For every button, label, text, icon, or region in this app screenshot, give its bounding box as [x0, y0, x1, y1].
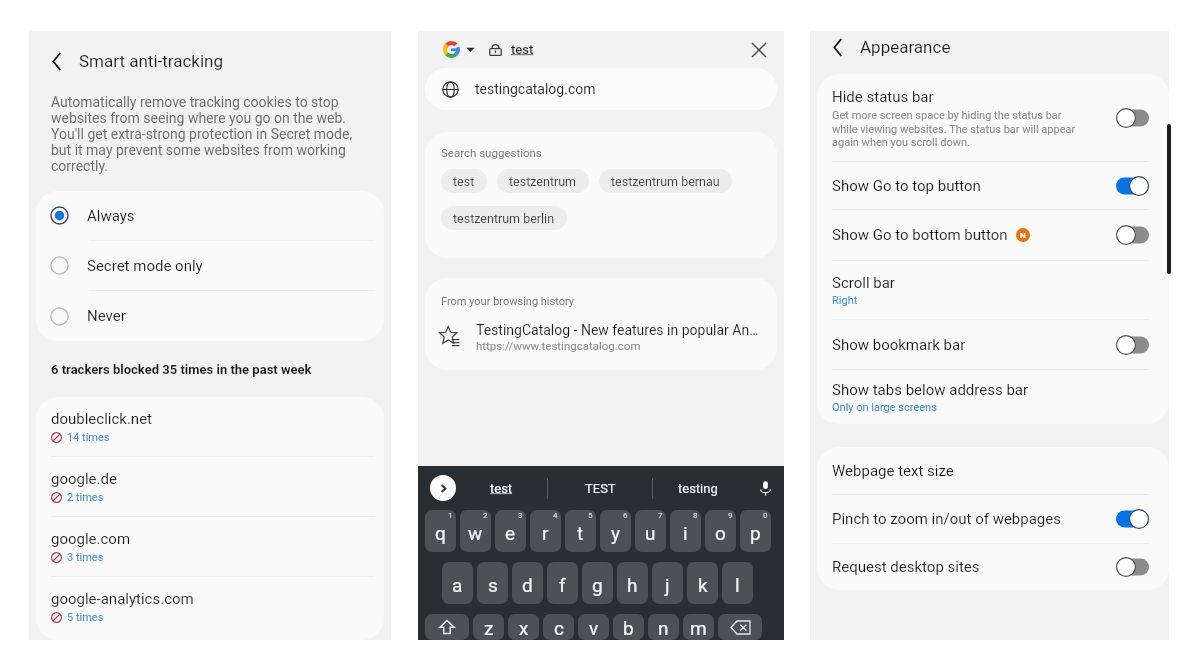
staticText: testzentrum	[509, 174, 577, 189]
staticText: 7	[658, 511, 663, 520]
button[interactable]: Show Go to top button	[817, 162, 1169, 210]
button[interactable]: Toggle off	[1116, 225, 1149, 245]
staticText: Automatically remove tracking cookies to…	[51, 94, 363, 174]
staticText: Hide status bar	[832, 88, 934, 106]
button[interactable]: Show tabs below address bar	[817, 370, 1169, 424]
button[interactable]: Toggle on	[1116, 509, 1149, 529]
button[interactable]: testzentrum bernau	[599, 169, 732, 193]
button[interactable]: Show Go to bottom button	[817, 210, 1169, 261]
staticText: testingcatalog.com	[475, 81, 596, 97]
staticText: a	[452, 574, 463, 596]
staticText: k	[698, 574, 708, 596]
button[interactable]: l	[722, 562, 753, 604]
staticText: n	[658, 617, 669, 639]
staticText: testzentrum bernau	[611, 174, 720, 189]
staticText: 0	[763, 511, 768, 520]
button[interactable]: Toggle on	[1116, 176, 1149, 196]
button[interactable]: Back	[29, 31, 391, 91]
staticText: c	[554, 617, 564, 639]
staticText: 3 times	[67, 551, 104, 564]
button[interactable]: z	[473, 614, 504, 640]
button[interactable]: Shift	[425, 614, 469, 640]
button[interactable]: v	[578, 614, 609, 640]
button[interactable]: testzentrum	[497, 169, 589, 193]
button[interactable]: g	[582, 562, 613, 604]
staticText: w	[468, 522, 483, 544]
button[interactable]: google.com	[36, 517, 384, 577]
button[interactable]: Always	[36, 191, 384, 241]
staticText: 4	[553, 511, 558, 520]
staticText: testzentrum berlin	[453, 211, 555, 226]
button[interactable]: More suggestions	[430, 475, 456, 501]
button[interactable]: Request desktop sites	[817, 544, 1169, 590]
button[interactable]: k	[687, 562, 718, 604]
button[interactable]: google-analytics.com	[36, 577, 384, 640]
button[interactable]: m	[683, 614, 714, 640]
button[interactable]: h	[617, 562, 648, 604]
button[interactable]: Secret mode only	[36, 241, 384, 291]
button[interactable]: Toggle off	[1116, 335, 1149, 355]
button[interactable]: 4	[530, 510, 561, 552]
staticText: i	[683, 522, 688, 544]
button[interactable]: n	[648, 614, 679, 640]
staticText: l	[735, 574, 740, 596]
staticText: 9	[728, 511, 733, 520]
staticText: g	[592, 574, 603, 596]
button[interactable]: TEST	[548, 471, 652, 505]
button[interactable]: Webpage text size	[817, 447, 1169, 495]
button[interactable]: testing	[653, 471, 743, 505]
staticText: r	[542, 522, 549, 544]
staticText: Search suggestions	[441, 146, 542, 159]
button[interactable]: 8	[670, 510, 701, 552]
staticText: Show Go to top button	[832, 177, 981, 195]
button[interactable]: testingcatalog.com	[425, 68, 777, 110]
staticText: Webpage text size	[832, 462, 954, 480]
button[interactable]: x	[508, 614, 539, 640]
button[interactable]: google.de	[36, 457, 384, 517]
button[interactable]: 3	[495, 510, 526, 552]
button[interactable]: Voice input	[750, 473, 780, 503]
button[interactable]: b	[613, 614, 644, 640]
button[interactable]: 2	[460, 510, 491, 552]
button[interactable]: Search engine	[443, 41, 460, 58]
button[interactable]: Toggle off	[1116, 108, 1149, 128]
button[interactable]: 1	[425, 510, 456, 552]
button[interactable]: Hide status bar	[817, 74, 1169, 162]
button[interactable]: TestingCatalog - New features in popular…	[425, 322, 777, 352]
staticText: t	[577, 522, 584, 544]
button[interactable]: 7	[635, 510, 666, 552]
staticText: p	[750, 522, 761, 544]
staticText: doubleclick.net	[51, 410, 153, 428]
button[interactable]: Show bookmark bar	[817, 320, 1169, 370]
button[interactable]: 0	[740, 510, 771, 552]
button[interactable]: 5	[565, 510, 596, 552]
button[interactable]: test	[441, 169, 487, 193]
button[interactable]: j	[652, 562, 683, 604]
button[interactable]: Scroll bar	[817, 261, 1169, 320]
staticText: Always	[87, 207, 135, 225]
button[interactable]: Pinch to zoom in/out of webpages	[817, 495, 1169, 544]
button[interactable]: test	[456, 471, 547, 505]
button[interactable]: Close	[745, 36, 773, 64]
button[interactable]: doubleclick.net	[36, 397, 384, 457]
staticText: Only on large screens	[832, 401, 937, 414]
button[interactable]: f	[547, 562, 578, 604]
button[interactable]: a	[442, 562, 473, 604]
button[interactable]: Backspace	[718, 614, 762, 640]
staticText: Secret mode only	[87, 257, 203, 275]
button[interactable]: Back	[810, 31, 1169, 63]
staticText: N	[1020, 231, 1026, 240]
button[interactable]: d	[512, 562, 543, 604]
button[interactable]: testzentrum berlin	[441, 206, 567, 230]
button[interactable]: s	[477, 562, 508, 604]
staticText: From your browsing history	[441, 295, 574, 308]
button[interactable]: 9	[705, 510, 736, 552]
button[interactable]: Never	[36, 291, 384, 341]
staticText: test	[453, 174, 475, 189]
staticText: u	[645, 522, 656, 544]
button[interactable]: Toggle off	[1116, 557, 1149, 577]
staticText: Show tabs below address bar	[832, 381, 1029, 399]
button[interactable]: 6	[600, 510, 631, 552]
button[interactable]: c	[543, 614, 574, 640]
staticText: 3	[518, 511, 523, 520]
